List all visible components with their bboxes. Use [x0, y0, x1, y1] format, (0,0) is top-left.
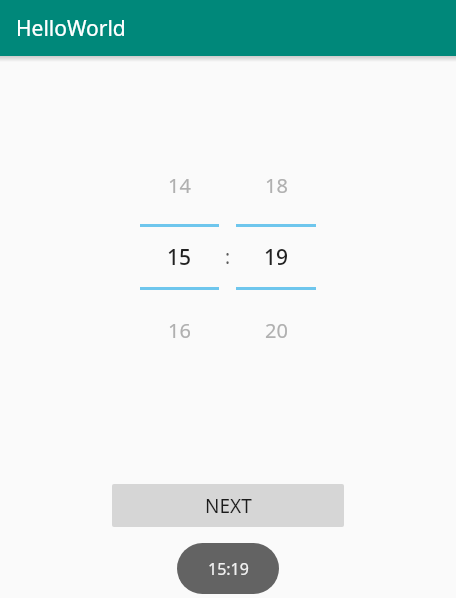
staticText: 18 — [265, 172, 288, 199]
button[interactable]: Hour — [140, 160, 219, 352]
staticText: : — [225, 244, 231, 270]
button[interactable]: NEXT — [112, 484, 344, 527]
staticText: 16 — [168, 317, 191, 344]
staticText: NEXT — [205, 493, 252, 519]
staticText: 15:19 — [208, 558, 249, 580]
staticText: 14 — [168, 172, 191, 199]
button[interactable]: Minute — [236, 160, 316, 352]
staticText: HelloWorld — [16, 14, 126, 43]
staticText: 15 — [167, 243, 192, 272]
staticText: 20 — [265, 317, 288, 344]
staticText: 19 — [264, 243, 289, 272]
